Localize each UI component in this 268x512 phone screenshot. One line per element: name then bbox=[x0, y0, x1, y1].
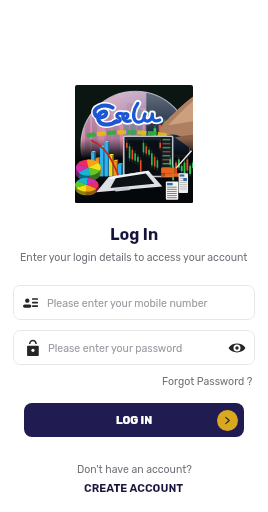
staticText: LOG IN bbox=[116, 414, 153, 427]
button[interactable]: CREATE ACCOUNT bbox=[84, 482, 184, 495]
other: Continue bbox=[217, 410, 238, 431]
staticText: Enter your login details to access your … bbox=[20, 251, 248, 263]
button[interactable]: LOG IN bbox=[24, 403, 244, 437]
staticText: Log In bbox=[110, 225, 159, 244]
button[interactable]: Show password bbox=[228, 339, 246, 357]
button[interactable]: Please enter your mobile number bbox=[13, 285, 255, 320]
staticText: Don't have an account? bbox=[77, 463, 192, 475]
button[interactable]: Forgot Password ? bbox=[162, 375, 253, 387]
button[interactable]: Please enter your password bbox=[13, 330, 255, 365]
staticText: Please enter your password bbox=[48, 342, 183, 354]
staticText: Please enter your mobile number bbox=[47, 297, 208, 309]
